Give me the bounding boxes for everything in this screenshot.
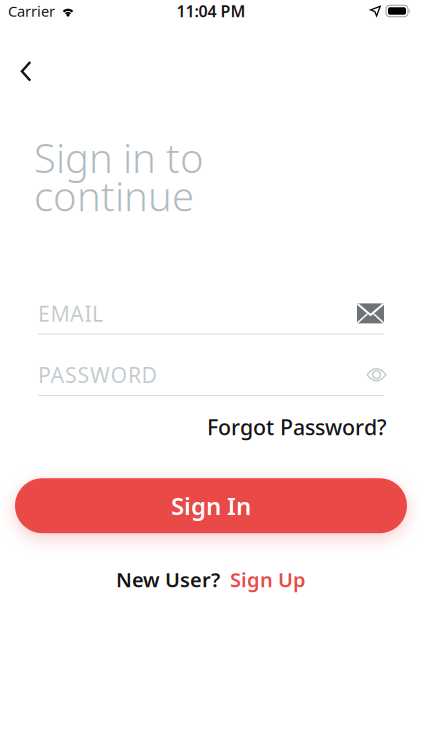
staticText: Sign Up xyxy=(230,566,306,593)
staticText: New User? xyxy=(116,566,220,593)
button[interactable]: Sign In xyxy=(0,478,422,533)
button[interactable]: Sign Up xyxy=(230,566,306,593)
button[interactable]: Back xyxy=(0,22,44,86)
staticText: PASSWORD xyxy=(38,361,157,389)
staticText: continue xyxy=(34,169,194,222)
staticText: EMAIL xyxy=(38,299,103,327)
staticText: Sign in to xyxy=(34,131,204,184)
staticText: Carrier xyxy=(8,1,55,21)
staticText: Forgot Password? xyxy=(207,413,387,441)
staticText: 11:04 PM xyxy=(176,0,245,22)
staticText: Sign In xyxy=(171,490,251,522)
button[interactable]: Forgot Password? xyxy=(207,413,387,441)
